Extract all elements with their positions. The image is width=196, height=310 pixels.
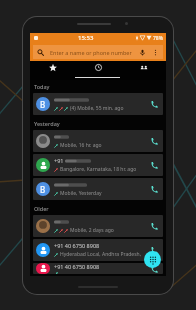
button[interactable]: Recents xyxy=(76,61,121,80)
button[interactable]: Enter a name or phone number xyxy=(33,45,163,59)
staticText: Mobile, 2 days ago xyxy=(70,227,114,234)
staticText: +91 40 6750 8908 xyxy=(54,263,100,270)
other: Voice search xyxy=(139,49,146,56)
staticText: Mobile, Yesterday xyxy=(60,190,102,197)
staticText: Today xyxy=(34,83,50,90)
staticText: Hyderabad Local, Andhra Pradesh, 2 d xyxy=(60,251,144,258)
button[interactable]: +91 40 6750 8908 xyxy=(33,239,163,261)
button[interactable]: Mobile, 2 days ago xyxy=(33,215,163,237)
staticText: Enter a name or phone number xyxy=(50,49,132,56)
button[interactable]: Mobile, 16 hr. ago xyxy=(33,130,163,152)
button[interactable]: Dialpad xyxy=(144,251,161,268)
staticText: 15:53 xyxy=(78,34,94,42)
button[interactable]: Call xyxy=(146,157,162,173)
staticText: Older xyxy=(34,205,49,212)
button[interactable]: +91 xyxy=(33,154,163,176)
staticText: +91 40 6750 8908 xyxy=(54,242,100,249)
staticText: (4) Mobile, 55 min. ago xyxy=(70,105,124,112)
button[interactable]: +91 40 6750 8908 xyxy=(33,263,163,274)
button[interactable]: B xyxy=(33,93,163,115)
button[interactable]: Favorites xyxy=(30,61,76,80)
staticText: Yesterday xyxy=(34,120,60,127)
staticText: Bangalore, Karnataka, 18 hr. ago xyxy=(60,166,137,173)
button[interactable]: Call xyxy=(146,181,162,197)
button[interactable]: Call xyxy=(146,263,162,274)
other: More options xyxy=(152,49,159,56)
staticText: B xyxy=(40,99,46,110)
button[interactable]: B xyxy=(33,178,163,200)
button[interactable]: Call xyxy=(146,218,162,234)
button[interactable]: Call xyxy=(146,242,162,258)
staticText: 78% xyxy=(153,35,163,42)
staticText: Mobile, 16 hr. ago xyxy=(60,142,102,149)
button[interactable]: Call xyxy=(146,133,162,149)
staticText: +91 xyxy=(54,157,65,164)
staticText: B xyxy=(40,184,46,195)
button[interactable]: Call xyxy=(146,96,162,112)
button[interactable]: Contacts xyxy=(121,61,166,80)
